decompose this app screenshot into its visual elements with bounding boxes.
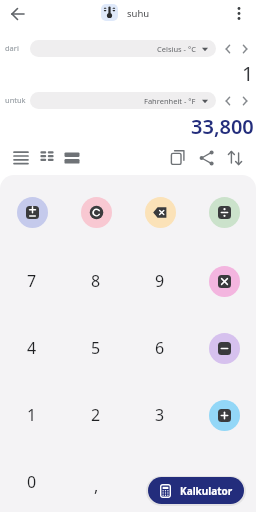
button[interactable]: 9 [140, 261, 180, 301]
button[interactable] [209, 266, 240, 297]
staticText: 33,800 [191, 113, 254, 139]
button[interactable] [10, 6, 26, 22]
button[interactable] [238, 42, 252, 56]
button[interactable] [17, 197, 48, 228]
button[interactable]: 7 [12, 261, 52, 301]
button[interactable] [81, 197, 112, 228]
staticText: untuk [5, 95, 26, 105]
staticText: 2 [91, 404, 101, 426]
button[interactable]: Kalkulator [148, 477, 244, 504]
staticText: 8 [91, 270, 101, 292]
staticText: 3 [155, 404, 165, 426]
button[interactable] [233, 5, 245, 22]
staticText: 5 [91, 337, 101, 359]
button[interactable]: 5 [76, 328, 116, 368]
staticText: 7 [27, 270, 37, 292]
button[interactable]: 2 [76, 395, 116, 435]
staticText: 1 [27, 404, 37, 426]
staticText: Kalkulator [180, 484, 233, 498]
button[interactable] [238, 94, 252, 108]
button[interactable] [221, 42, 235, 56]
button[interactable] [37, 148, 57, 168]
staticText: 9 [155, 270, 165, 292]
staticText: 4 [27, 337, 37, 359]
staticText: , [94, 475, 99, 497]
button[interactable] [197, 148, 217, 168]
button[interactable] [62, 148, 82, 168]
button[interactable]: 1 [12, 395, 52, 435]
button[interactable] [11, 148, 31, 168]
button[interactable] [209, 333, 240, 364]
staticText: Celsius - °C [157, 44, 196, 54]
button[interactable]: 0 [12, 462, 52, 502]
button[interactable]: 3 [140, 395, 180, 435]
staticText: suhu [127, 7, 150, 20]
button[interactable] [168, 148, 188, 168]
staticText: dari [5, 43, 19, 53]
button[interactable]: , [76, 466, 116, 506]
staticText: 6 [155, 337, 165, 359]
button[interactable]: 6 [140, 328, 180, 368]
button[interactable]: Fahrenheit - °F [30, 92, 216, 109]
button[interactable] [145, 197, 176, 228]
button[interactable]: 4 [12, 328, 52, 368]
button[interactable] [101, 4, 118, 21]
staticText: Fahrenheit - °F [144, 96, 196, 106]
staticText: 0 [27, 471, 37, 493]
button[interactable] [225, 148, 245, 168]
staticText: 1 [242, 60, 254, 84]
button[interactable] [221, 94, 235, 108]
button[interactable] [209, 197, 240, 228]
button[interactable]: 8 [76, 261, 116, 301]
button[interactable] [209, 400, 240, 431]
button[interactable]: Celsius - °C [30, 40, 216, 57]
